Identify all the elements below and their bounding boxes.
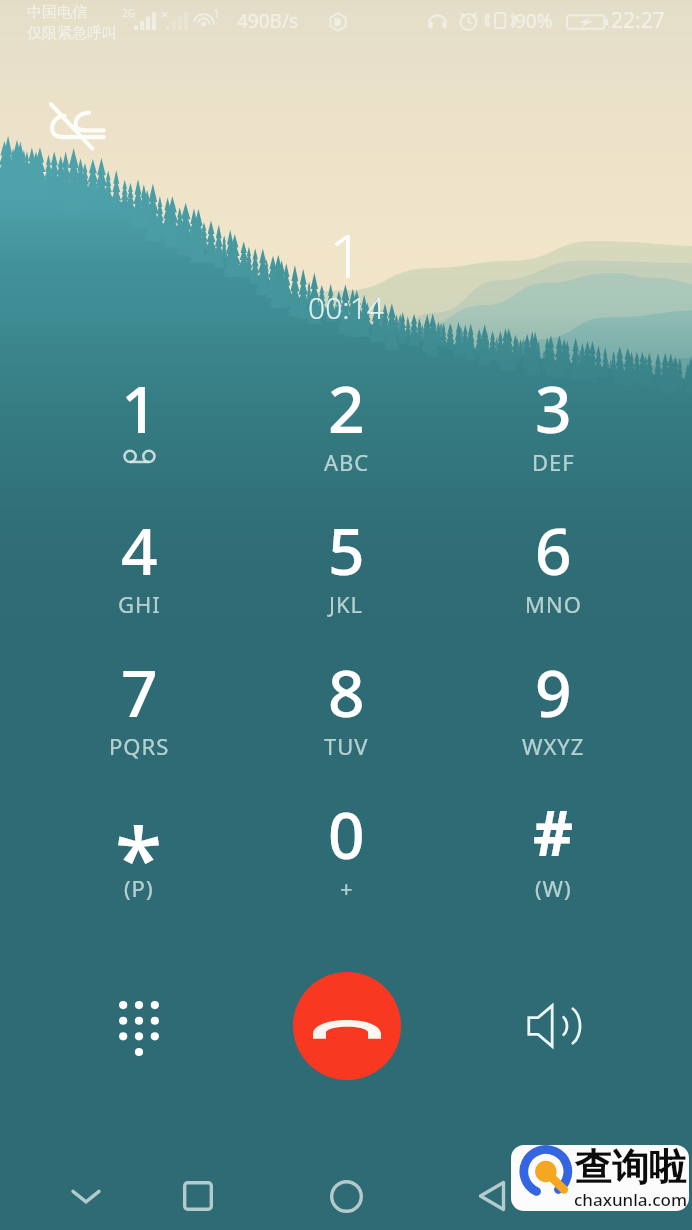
button[interactable]: HD voice off xyxy=(42,91,112,161)
staticText: MNO xyxy=(525,589,582,619)
staticText: 3 xyxy=(535,365,572,437)
button[interactable]: 4 xyxy=(35,507,243,649)
button[interactable]: 7 xyxy=(35,649,243,791)
staticText: JKL xyxy=(329,589,364,619)
staticText: 5 xyxy=(328,507,365,579)
staticText: 22:27 xyxy=(611,6,665,35)
button[interactable]: Keypad xyxy=(35,951,243,1101)
staticText: (P) xyxy=(124,873,154,903)
staticText: ABC xyxy=(324,447,370,477)
button[interactable]: 5 xyxy=(243,507,450,649)
button[interactable]: 3 xyxy=(450,365,657,507)
staticText: + xyxy=(340,873,354,903)
button[interactable]: End call xyxy=(293,972,401,1080)
button[interactable]: 6 xyxy=(450,507,657,649)
button[interactable]: 0 xyxy=(243,791,450,933)
staticText: * xyxy=(115,798,163,870)
button[interactable]: 8 xyxy=(243,649,450,791)
staticText: 7 xyxy=(121,649,158,721)
button[interactable]: 9 xyxy=(450,649,657,791)
staticText: 仅限紧急呼叫 xyxy=(27,24,117,43)
staticText: 1 xyxy=(121,365,158,437)
staticText: 2 xyxy=(328,365,365,437)
staticText: 1 xyxy=(213,5,220,21)
staticText: 中国电信 xyxy=(27,3,87,22)
staticText: GHI xyxy=(118,589,161,619)
staticText: 0 xyxy=(328,791,365,863)
staticText: 查询啦 xyxy=(575,1145,686,1191)
button[interactable]: 1 xyxy=(35,365,243,507)
button[interactable]: Home xyxy=(314,1164,378,1228)
button[interactable]: Back xyxy=(460,1164,524,1228)
staticText: 490B/s xyxy=(237,8,299,34)
staticText: (W) xyxy=(535,873,572,903)
staticText: chaxunla.com xyxy=(574,1188,688,1211)
staticText: PQRS xyxy=(109,731,170,761)
button[interactable]: Hide keyboard xyxy=(54,1164,118,1228)
staticText: × xyxy=(161,5,169,23)
staticText: 8 xyxy=(328,649,365,721)
staticText: 1 xyxy=(329,214,364,296)
button[interactable]: Speaker xyxy=(450,951,657,1101)
staticText: 9 xyxy=(535,649,572,721)
staticText: 4 xyxy=(121,507,158,579)
staticText: # xyxy=(533,790,574,862)
staticText: 90% xyxy=(515,8,553,34)
staticText: WXYZ xyxy=(522,731,585,761)
button[interactable]: # xyxy=(450,791,657,933)
button[interactable]: 2 xyxy=(243,365,450,507)
staticText: 2G xyxy=(122,6,135,20)
staticText: DEF xyxy=(532,447,575,477)
staticText: 6 xyxy=(535,507,572,579)
button[interactable]: * xyxy=(35,791,243,933)
button[interactable]: Recents xyxy=(166,1164,230,1228)
staticText: TUV xyxy=(324,731,369,761)
staticText: 00:14 xyxy=(308,287,384,328)
